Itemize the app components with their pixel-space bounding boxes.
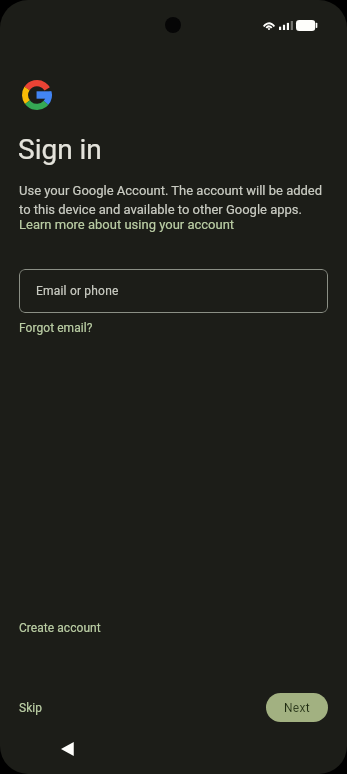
button[interactable]: Forgot email? [19, 321, 93, 335]
staticText: Use your Google Account. The account wil… [19, 183, 328, 217]
staticText: Sign in [18, 133, 102, 166]
staticText: Next [284, 701, 311, 715]
button[interactable]: Email or phone [19, 269, 328, 313]
button[interactable]: Back [48, 733, 86, 765]
button[interactable]: Learn more about using your account [19, 217, 235, 232]
button[interactable]: Skip [19, 701, 43, 715]
button[interactable]: Create account [19, 621, 101, 635]
staticText: Email or phone [36, 284, 119, 298]
button[interactable]: Next [266, 693, 328, 722]
